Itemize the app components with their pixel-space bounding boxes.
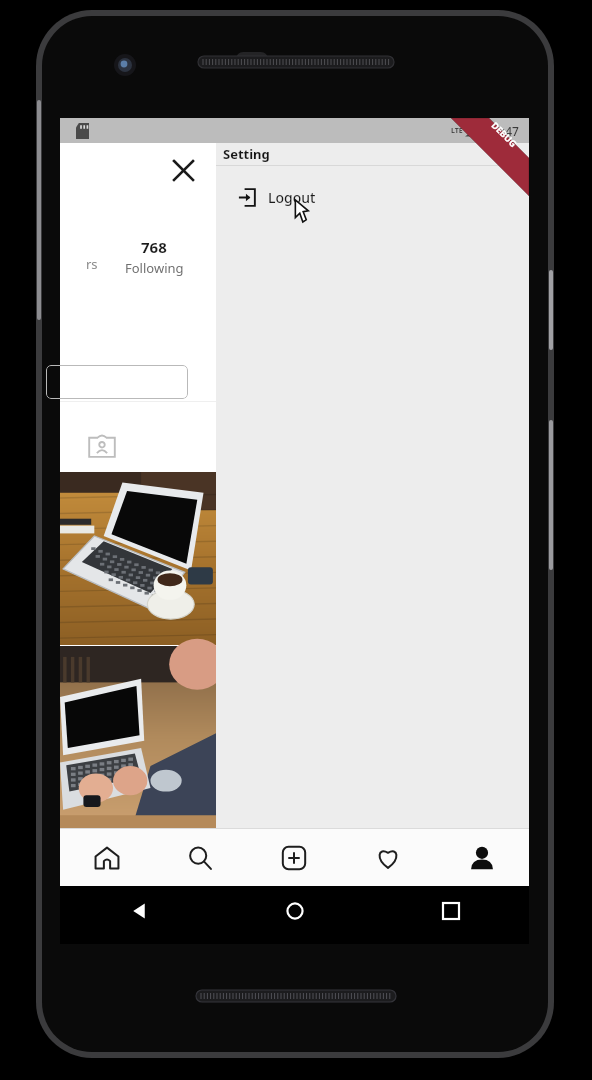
button[interactable]: Search (153, 829, 247, 886)
button[interactable]: Logout (216, 180, 529, 214)
button[interactable]: Back (60, 886, 217, 936)
staticText: Setting (223, 145, 270, 163)
staticText: 768 (141, 237, 167, 257)
button[interactable]: rs (60, 237, 98, 273)
button[interactable]: Home (217, 886, 373, 936)
button[interactable]: Profile (435, 829, 529, 886)
button[interactable]: Home (60, 829, 153, 886)
button[interactable]: Name tag (86, 430, 118, 462)
button[interactable]: Add post (247, 829, 341, 886)
staticText: Following (125, 259, 184, 277)
staticText: Logout (268, 188, 316, 207)
button[interactable]: 768 (98, 237, 210, 277)
staticText: rs (86, 255, 98, 273)
button[interactable]: Edit profile (46, 365, 188, 399)
button[interactable]: Recents (373, 886, 529, 936)
button[interactable]: Activity (341, 829, 435, 886)
button[interactable]: Close (166, 153, 200, 187)
staticText: DEBUG (489, 119, 520, 149)
staticText: 4:47 (495, 123, 519, 139)
staticText: LTE (451, 126, 463, 136)
